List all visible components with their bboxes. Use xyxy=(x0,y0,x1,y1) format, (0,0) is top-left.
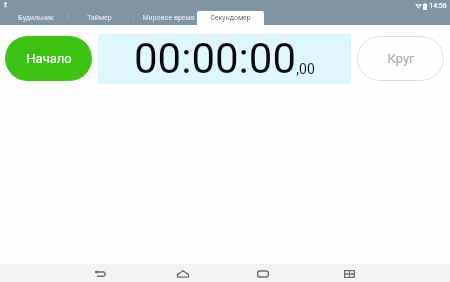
button[interactable]: Будильник xyxy=(3,11,69,25)
staticText: Секундомер xyxy=(210,14,251,22)
button[interactable]: Таймер xyxy=(66,11,132,25)
button[interactable]: Home xyxy=(174,265,192,282)
button[interactable]: Back xyxy=(91,265,109,282)
staticText: 00:00:00 xyxy=(134,34,296,83)
staticText: Мировое время xyxy=(142,14,195,22)
staticText: Начало xyxy=(26,51,72,66)
button[interactable]: Multi window xyxy=(340,265,358,282)
staticText: Круг xyxy=(387,51,415,66)
button[interactable]: Начало xyxy=(5,36,92,81)
staticText: Таймер xyxy=(87,14,112,22)
button[interactable]: Секундомер xyxy=(197,11,264,25)
staticText: Будильник xyxy=(18,14,54,22)
button[interactable]: Круг xyxy=(357,36,444,81)
button[interactable]: Recent apps xyxy=(254,265,272,282)
staticText: 14:56 xyxy=(429,2,447,10)
button[interactable]: Мировое время xyxy=(135,11,201,25)
staticText: ,00 xyxy=(296,61,315,77)
